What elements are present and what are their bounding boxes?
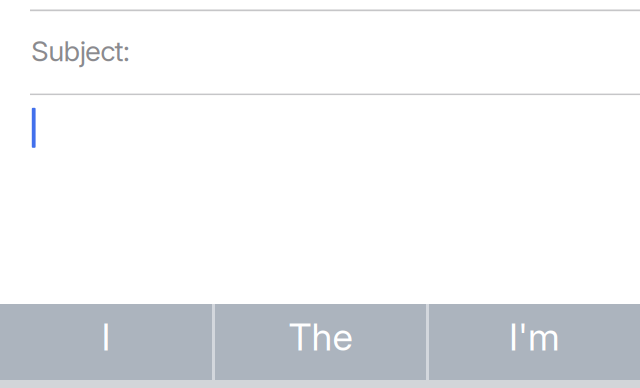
button[interactable]: I'm [429, 304, 640, 380]
button[interactable]: Subject: [0, 9, 640, 95]
button[interactable] [0, 95, 640, 304]
button[interactable]: The [215, 304, 426, 380]
button[interactable]: I [0, 304, 212, 380]
staticText: I'm [509, 314, 560, 360]
staticText: I [101, 314, 110, 360]
staticText: The [288, 314, 352, 360]
staticText: Subject: [31, 34, 130, 68]
